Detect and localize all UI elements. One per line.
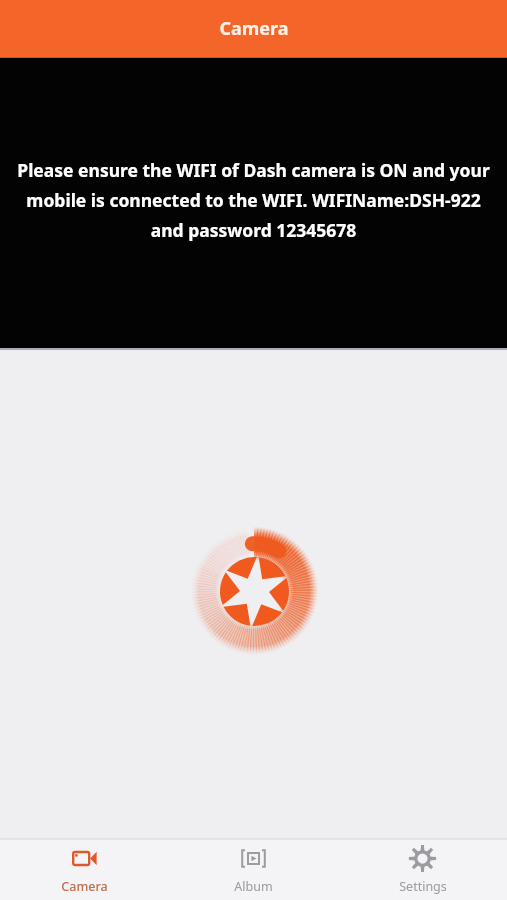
- staticText: Please ensure the WIFI of Dash camera is…: [14, 158, 493, 242]
- staticText: Camera: [61, 878, 108, 895]
- button[interactable]: Camera: [0, 840, 169, 900]
- other: Settings: [410, 846, 435, 871]
- staticText: Settings: [399, 878, 447, 895]
- button[interactable]: Album: [169, 840, 338, 900]
- staticText: Camera: [219, 16, 289, 41]
- button[interactable]: Connecting to camera: [198, 535, 310, 647]
- other: Album: [241, 846, 266, 871]
- staticText: Album: [234, 878, 273, 895]
- other: Camera: [72, 846, 97, 871]
- button[interactable]: Settings: [338, 840, 507, 900]
